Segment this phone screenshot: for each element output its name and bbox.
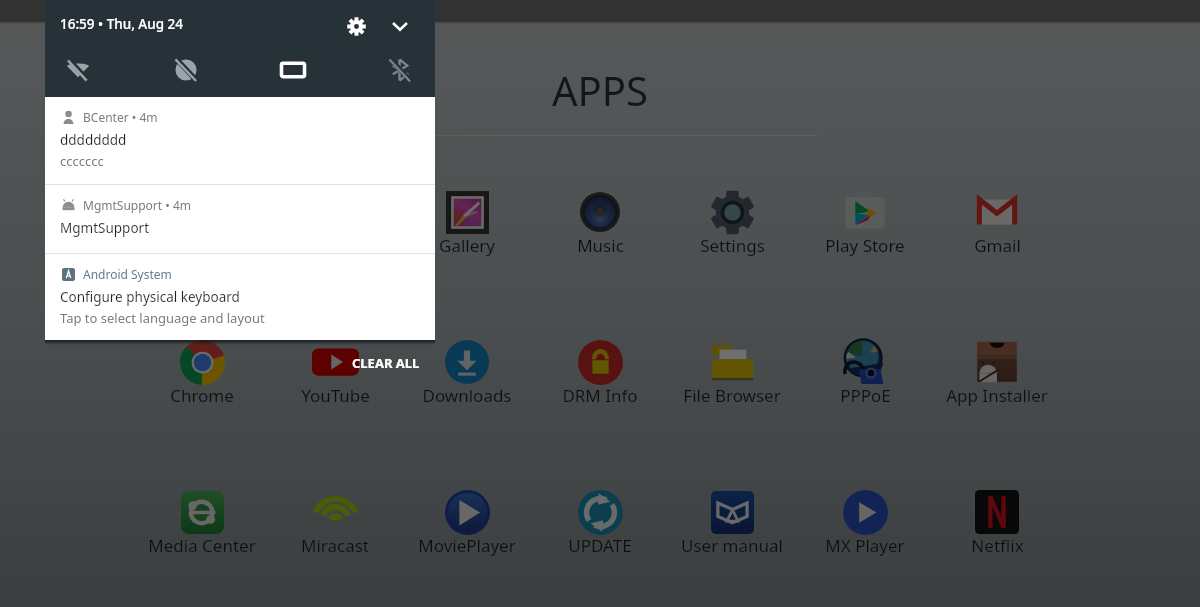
staticText: APPS <box>552 63 648 117</box>
staticText: Gallery <box>439 234 495 257</box>
staticText: Play Store <box>825 234 905 257</box>
button[interactable]: DRM Info <box>536 336 664 408</box>
staticText: Settings <box>700 234 765 257</box>
button[interactable]: Cast screen <box>277 54 309 86</box>
button[interactable]: Location off <box>170 54 202 86</box>
staticText: Music <box>577 234 624 257</box>
staticText: Tap to select language and layout <box>60 309 265 327</box>
button[interactable]: MoviePlayer <box>403 486 531 558</box>
button[interactable]: CLEAR ALL <box>338 351 434 375</box>
staticText: MoviePlayer <box>418 534 516 557</box>
staticText: Miracast <box>301 534 369 557</box>
button[interactable]: Android System <box>45 254 435 340</box>
staticText: MX Player <box>825 534 905 557</box>
staticText: Downloads <box>422 384 512 407</box>
staticText: Android System <box>83 266 172 282</box>
button[interactable]: Play Store <box>801 186 929 258</box>
button[interactable]: Gallery <box>403 186 531 258</box>
staticText: ccccccc <box>60 152 104 170</box>
staticText: CLEAR ALL <box>352 354 420 372</box>
button[interactable]: YouTube <box>271 336 399 408</box>
button[interactable]: Netflix <box>933 486 1061 558</box>
staticText: YouTube <box>301 384 370 407</box>
button[interactable]: Bluetooth off <box>384 54 416 86</box>
staticText: Media Center <box>148 534 256 557</box>
button[interactable]: MX Player <box>801 486 929 558</box>
button[interactable]: Gmail <box>933 186 1061 258</box>
button[interactable]: Settings <box>668 186 796 258</box>
staticText: Configure physical keyboard <box>60 288 240 306</box>
staticText: 16:59 • Thu, Aug 24 <box>60 15 183 33</box>
button[interactable]: File Browser <box>668 336 796 408</box>
button[interactable]: Music <box>536 186 664 258</box>
button[interactable]: Expand quick settings <box>386 12 414 40</box>
staticText: DRM Info <box>562 384 638 407</box>
button[interactable]: Wi-Fi off <box>62 54 94 86</box>
button[interactable]: MgmtSupport • 4m <box>45 185 435 253</box>
staticText: Gmail <box>974 234 1021 257</box>
button[interactable]: UPDATE <box>536 486 664 558</box>
staticText: User manual <box>681 534 783 557</box>
button[interactable]: Settings <box>342 12 370 40</box>
button[interactable]: PPPoE <box>801 336 929 408</box>
button[interactable]: Miracast <box>271 486 399 558</box>
staticText: Chrome <box>170 384 234 407</box>
button[interactable]: Downloads <box>403 336 531 408</box>
button[interactable]: Media Center <box>138 486 266 558</box>
button[interactable]: BCenter • 4m <box>45 97 435 184</box>
staticText: Netflix <box>971 534 1024 557</box>
staticText: File Browser <box>683 384 781 407</box>
staticText: UPDATE <box>568 534 632 557</box>
button[interactable]: User manual <box>668 486 796 558</box>
staticText: MgmtSupport <box>60 219 150 237</box>
staticText: PPPoE <box>840 384 891 407</box>
staticText: MgmtSupport • 4m <box>83 197 191 213</box>
staticText: BCenter • 4m <box>83 109 158 125</box>
staticText: App Installer <box>946 384 1048 407</box>
button[interactable]: Chrome <box>138 336 266 408</box>
staticText: dddddddd <box>60 131 127 149</box>
button[interactable]: App Installer <box>933 336 1061 408</box>
